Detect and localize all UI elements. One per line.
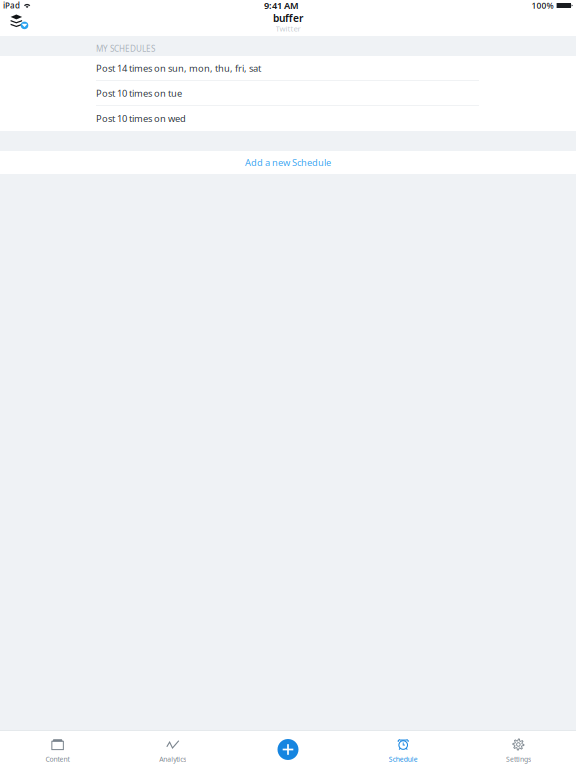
staticText: MY SCHEDULES: [96, 43, 155, 54]
staticText: 9:41 AM: [264, 0, 299, 12]
button[interactable]: Analytics: [115, 731, 230, 768]
staticText: Post 10 times on wed: [96, 112, 186, 125]
staticText: Settings: [506, 754, 531, 764]
staticText: Schedule: [389, 754, 418, 764]
button[interactable]: Settings: [461, 731, 576, 768]
staticText: Twitter: [275, 23, 300, 34]
button[interactable]: Schedule: [346, 731, 461, 768]
button[interactable]: Post 14 times on sun, mon, thu, fri, sat: [0, 56, 576, 81]
staticText: Add a new Schedule: [245, 156, 331, 169]
button[interactable]: Buffer profile: [11, 14, 28, 29]
button[interactable]: Add a new Schedule: [0, 151, 576, 174]
button[interactable]: Post 10 times on wed: [0, 106, 576, 131]
staticText: Post 10 times on tue: [96, 87, 182, 100]
staticText: buffer: [273, 11, 303, 25]
button[interactable]: Content: [0, 731, 115, 768]
button[interactable]: Compose: [230, 731, 346, 768]
staticText: Post 14 times on sun, mon, thu, fri, sat: [96, 62, 261, 75]
button[interactable]: Post 10 times on tue: [0, 81, 576, 106]
staticText: iPad: [3, 0, 20, 11]
staticText: 100%: [532, 0, 554, 11]
staticText: Analytics: [159, 754, 186, 764]
staticText: Content: [46, 754, 70, 764]
